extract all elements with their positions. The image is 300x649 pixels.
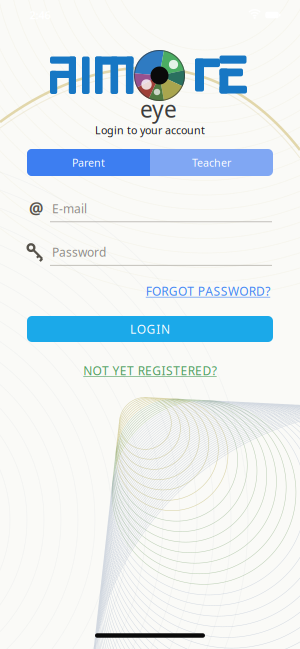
button[interactable]: LOGIN xyxy=(27,316,273,342)
staticText: E-mail xyxy=(52,200,87,216)
staticText: FORGOT PASSWORD? xyxy=(146,283,270,299)
button[interactable]: Parent xyxy=(27,149,150,176)
staticText: Login to your account xyxy=(95,123,205,137)
staticText: NOT YET REGISTERED? xyxy=(83,362,217,378)
staticText: @ xyxy=(29,197,43,219)
staticText: 2:46 xyxy=(29,8,50,22)
staticText: Password xyxy=(52,244,106,260)
staticText: Teacher xyxy=(192,155,231,170)
button[interactable]: FORGOT PASSWORD? xyxy=(146,283,270,299)
button[interactable]: Password xyxy=(27,238,273,266)
button[interactable]: E-mail xyxy=(27,194,273,222)
button[interactable]: Teacher xyxy=(150,149,273,176)
staticText: eye xyxy=(140,94,177,124)
staticText: Parent xyxy=(72,155,105,170)
button[interactable]: NOT YET REGISTERED? xyxy=(83,362,217,378)
staticText: LOGIN xyxy=(130,321,170,337)
